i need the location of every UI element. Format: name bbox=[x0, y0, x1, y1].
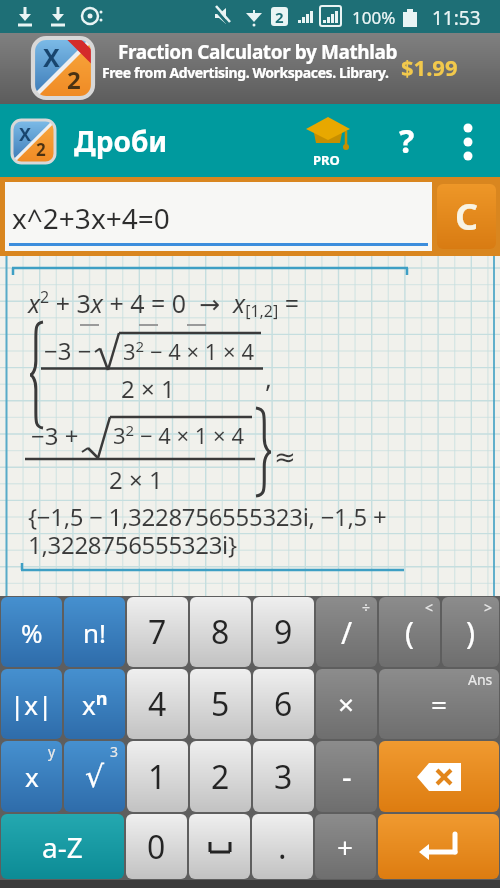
button[interactable]: 8 bbox=[190, 597, 251, 667]
button[interactable]: ( bbox=[379, 597, 440, 667]
button[interactable]: C bbox=[437, 184, 496, 249]
staticText: 7 bbox=[148, 610, 167, 654]
staticText: Ans bbox=[468, 670, 493, 689]
button[interactable]: - bbox=[316, 741, 377, 812]
staticText: 1,3228756555323i} bbox=[28, 528, 237, 561]
staticText: C bbox=[455, 192, 479, 241]
staticText: xn bbox=[82, 686, 108, 722]
staticText: % bbox=[21, 615, 43, 650]
staticText: x bbox=[25, 759, 39, 794]
button[interactable]: n! bbox=[64, 597, 125, 667]
staticText: n! bbox=[83, 615, 107, 650]
staticText: 6 bbox=[274, 682, 293, 726]
staticText: ÷ bbox=[362, 598, 371, 617]
button[interactable]: . bbox=[252, 814, 313, 879]
staticText: 32 − 4 × 1 × 4 bbox=[123, 336, 254, 366]
staticText: 2 × 1 bbox=[121, 372, 175, 405]
staticText: ≈ bbox=[274, 442, 296, 472]
staticText: × bbox=[338, 685, 355, 723]
button[interactable]: 6 bbox=[253, 669, 314, 739]
staticText: {−1,5 − 1,3228756555323i, −1,5 + bbox=[28, 500, 387, 533]
staticText: 100% bbox=[352, 6, 396, 29]
staticText: X bbox=[19, 122, 32, 147]
button[interactable]: 4 bbox=[127, 669, 188, 739]
staticText: / bbox=[341, 612, 353, 653]
staticText: ( bbox=[405, 612, 414, 653]
staticText: x^2+3x+4=0 bbox=[12, 199, 170, 237]
button[interactable]: ) bbox=[442, 597, 499, 667]
staticText: . bbox=[278, 825, 287, 869]
staticText: , bbox=[265, 360, 272, 395]
button[interactable]: 5 bbox=[190, 669, 251, 739]
button[interactable] bbox=[448, 114, 488, 168]
button[interactable]: √ bbox=[64, 741, 125, 812]
staticText: −3 + bbox=[31, 419, 79, 452]
staticText: + bbox=[337, 828, 354, 866]
staticText: 2 bbox=[67, 63, 81, 96]
staticText: $1.99 bbox=[401, 52, 458, 82]
staticText: Fraction Calculator by Mathlab bbox=[118, 39, 398, 65]
button[interactable]: |x| bbox=[1, 669, 62, 739]
button[interactable]: / bbox=[316, 597, 377, 667]
staticText: 2 bbox=[36, 138, 46, 161]
staticText: |x| bbox=[10, 687, 53, 722]
button[interactable]: PRO bbox=[300, 110, 356, 172]
staticText: 2 bbox=[211, 755, 230, 799]
staticText: > bbox=[484, 598, 493, 617]
button[interactable]: X bbox=[0, 33, 500, 104]
staticText: 1 bbox=[148, 755, 167, 799]
staticText: 0 bbox=[147, 825, 166, 869]
staticText: a-Z bbox=[42, 828, 83, 866]
staticText: = bbox=[431, 685, 448, 723]
button[interactable]: 3 bbox=[253, 741, 314, 812]
staticText: x2 + 3x + 4 = 0 → x[1,2] = bbox=[28, 286, 300, 322]
staticText: 2 bbox=[275, 7, 284, 27]
button[interactable]: 1 bbox=[127, 741, 188, 812]
button[interactable]: x bbox=[1, 741, 62, 812]
staticText: Дроби bbox=[74, 122, 168, 160]
button[interactable]: 7 bbox=[127, 597, 188, 667]
staticText: X bbox=[43, 40, 60, 74]
staticText: 4 bbox=[148, 682, 167, 726]
staticText: - bbox=[342, 756, 352, 797]
staticText: √ bbox=[85, 759, 105, 794]
button[interactable] bbox=[379, 741, 499, 812]
button[interactable]: 9 bbox=[253, 597, 314, 667]
staticText: 32 − 4 × 1 × 4 bbox=[113, 420, 244, 450]
button[interactable]: + bbox=[315, 814, 376, 879]
staticText: y bbox=[48, 742, 56, 761]
button[interactable]: = bbox=[379, 669, 499, 739]
button[interactable] bbox=[378, 814, 499, 879]
button[interactable]: × bbox=[316, 669, 377, 739]
button[interactable]: x^2+3x+4=0 bbox=[5, 182, 432, 251]
staticText: < bbox=[425, 598, 434, 617]
button[interactable]: ? bbox=[385, 114, 429, 168]
staticText: 5 bbox=[211, 682, 230, 726]
staticText: 9 bbox=[274, 610, 293, 654]
button[interactable]: 0 bbox=[126, 814, 187, 879]
button[interactable]: % bbox=[1, 597, 62, 667]
button[interactable] bbox=[189, 814, 250, 879]
staticText: ? bbox=[399, 119, 415, 163]
staticText: Free from Advertising. Workspaces. Libra… bbox=[102, 63, 389, 82]
button[interactable]: xn bbox=[64, 669, 125, 739]
staticText: −3 − bbox=[44, 334, 92, 367]
staticText: 3 bbox=[110, 742, 119, 761]
staticText: ) bbox=[466, 612, 475, 653]
staticText: 8 bbox=[211, 610, 230, 654]
staticText: 2 × 1 bbox=[109, 463, 163, 496]
button[interactable]: a-Z bbox=[1, 814, 124, 879]
staticText: 3 bbox=[274, 755, 293, 799]
staticText: PRO bbox=[313, 151, 340, 169]
staticText: 11:53 bbox=[432, 5, 481, 31]
button[interactable]: 2 bbox=[190, 741, 251, 812]
